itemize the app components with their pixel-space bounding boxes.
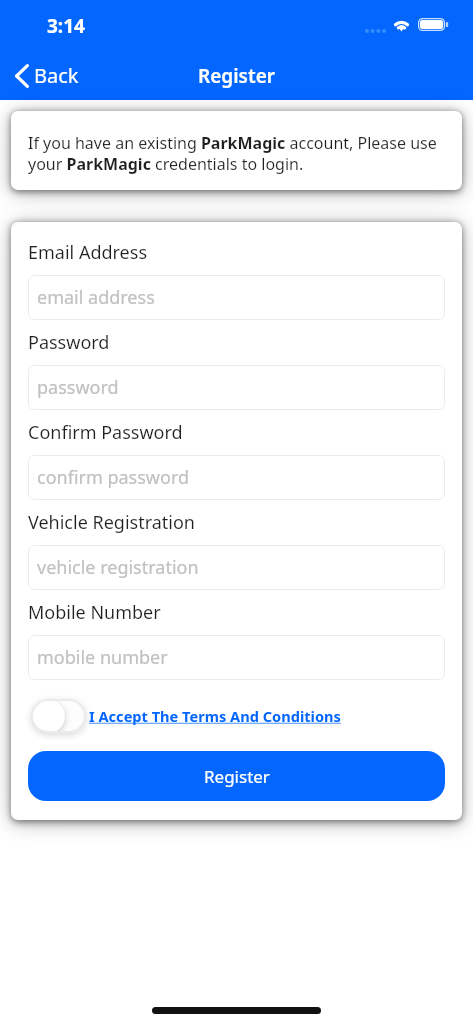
staticText: If you have an existing ParkMagic accoun… xyxy=(28,132,445,175)
button[interactable]: confirm password xyxy=(28,455,445,500)
staticText: Email Address xyxy=(28,240,148,265)
staticText: email address xyxy=(37,285,155,310)
staticText: confirm password xyxy=(37,465,190,490)
staticText: 3:14 xyxy=(47,13,85,39)
staticText: Confirm Password xyxy=(28,420,183,445)
staticText: Vehicle Registration xyxy=(28,510,195,535)
button[interactable]: email address xyxy=(28,275,445,320)
staticText: Register xyxy=(204,765,270,788)
staticText: vehicle registration xyxy=(37,555,199,580)
staticText: mobile number xyxy=(37,645,168,670)
staticText: password xyxy=(37,375,119,400)
button[interactable]: I Accept The Terms And Conditions xyxy=(89,704,341,728)
staticText: Register xyxy=(198,63,276,89)
button[interactable]: password xyxy=(28,365,445,410)
button[interactable]: Back xyxy=(0,56,93,95)
staticText: Back xyxy=(34,62,79,89)
button[interactable]: vehicle registration xyxy=(28,545,445,590)
button[interactable]: mobile number xyxy=(28,635,445,680)
button[interactable]: Register xyxy=(28,751,445,801)
staticText: Mobile Number xyxy=(28,600,161,625)
button[interactable]: Accept terms and conditions toggle xyxy=(31,699,86,733)
staticText: Password xyxy=(28,330,110,355)
